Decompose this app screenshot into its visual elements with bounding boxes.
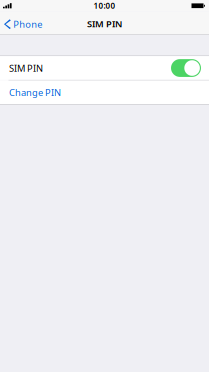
- button[interactable]: SIM PIN: [0, 56, 209, 80]
- staticText: Phone: [13, 18, 42, 30]
- button[interactable]: Phone: [0, 15, 47, 33]
- button[interactable]: Change PIN: [0, 80, 209, 104]
- staticText: 10:00: [93, 0, 115, 11]
- staticText: SIM PIN: [9, 62, 43, 74]
- staticText: Change PIN: [9, 86, 61, 99]
- staticText: SIM PIN: [87, 17, 122, 30]
